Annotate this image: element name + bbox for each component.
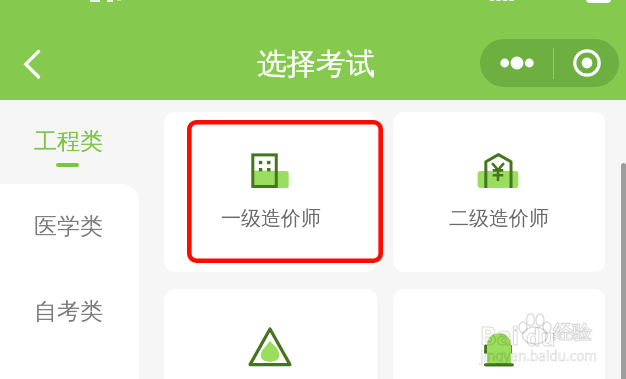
staticText: 一级造价师 bbox=[221, 206, 321, 231]
button[interactable]: 自考类 bbox=[0, 270, 139, 355]
staticText: 工程类 bbox=[34, 127, 103, 156]
button[interactable]: 一级造价师 bbox=[164, 112, 377, 272]
button[interactable]: 二级造价师 bbox=[393, 112, 605, 272]
staticText: jingyan.baidu.com bbox=[480, 347, 597, 365]
staticText: 经验 bbox=[553, 321, 591, 345]
staticText: du bbox=[526, 321, 556, 352]
button[interactable]: 建造师 bbox=[393, 289, 605, 379]
staticText: Bai bbox=[480, 318, 520, 352]
button[interactable]: More options bbox=[480, 39, 619, 87]
button[interactable]: 消防工程师 bbox=[164, 289, 377, 379]
staticText: 二级造价师 bbox=[449, 206, 549, 231]
button[interactable]: Back bbox=[12, 42, 52, 87]
button[interactable]: 工程类 bbox=[0, 100, 139, 185]
staticText: 选择考试 bbox=[257, 46, 375, 83]
button[interactable]: 医学类 bbox=[0, 185, 139, 270]
staticText: 自考类 bbox=[34, 297, 103, 326]
staticText: 医学类 bbox=[34, 212, 103, 241]
